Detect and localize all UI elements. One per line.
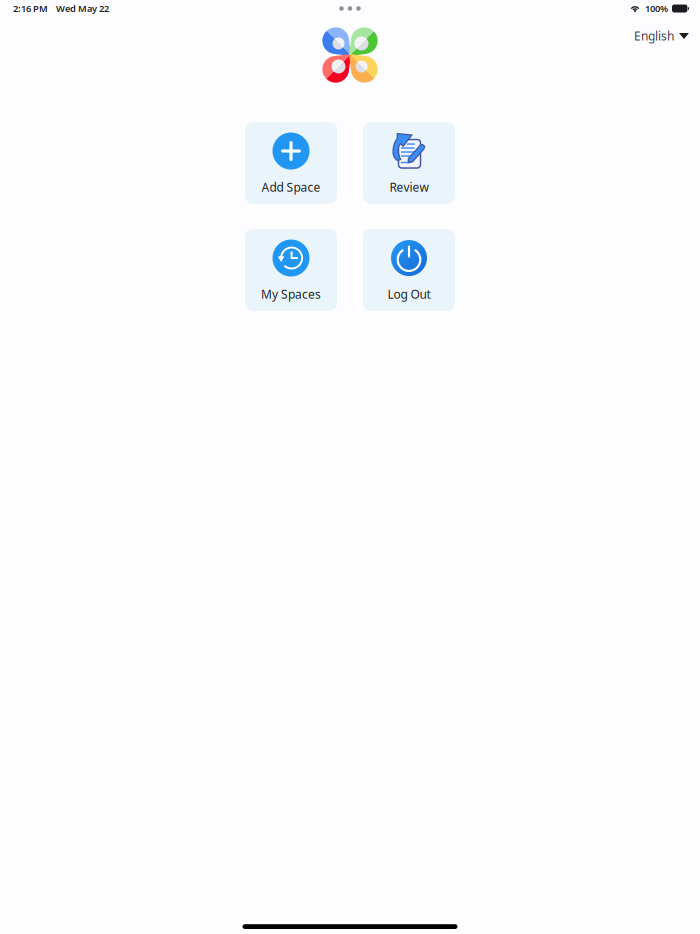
staticText: Review xyxy=(389,179,428,195)
staticText: Log Out xyxy=(387,286,430,302)
staticText: Wed May 22 xyxy=(56,2,109,15)
button[interactable]: Log Out xyxy=(363,229,455,311)
staticText: My Spaces xyxy=(261,286,321,302)
staticText: 2:16 PM xyxy=(13,2,48,15)
staticText: Add Space xyxy=(261,179,320,195)
button[interactable]: English xyxy=(626,23,697,49)
staticText: 100% xyxy=(645,2,668,15)
button[interactable]: Review xyxy=(363,122,455,204)
button[interactable]: My Spaces xyxy=(245,229,337,311)
button[interactable]: Add Space xyxy=(245,122,337,204)
staticText: English xyxy=(634,28,674,44)
